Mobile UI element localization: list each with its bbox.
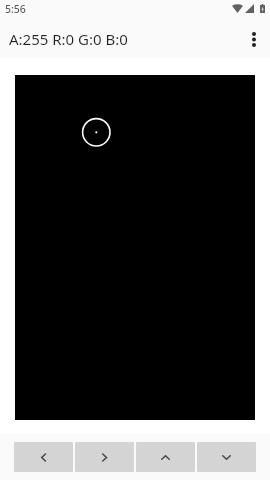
staticText: A:255 R:0 G:0 B:0	[9, 29, 128, 49]
button[interactable]: Left	[14, 442, 73, 472]
button[interactable]: Down	[197, 442, 256, 472]
button[interactable]: Colour canvas	[15, 75, 255, 420]
button[interactable]: Up	[136, 442, 195, 472]
button[interactable]: Right	[75, 442, 134, 472]
button[interactable]: More options	[234, 19, 270, 59]
staticText: 5:56	[5, 2, 26, 16]
